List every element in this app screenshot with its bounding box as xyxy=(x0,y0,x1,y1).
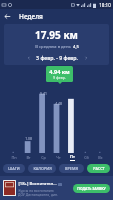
staticText: Пн xyxy=(11,155,17,160)
staticText: Ср xyxy=(41,155,46,160)
button[interactable]: [18+] Воспитател… xyxy=(0,176,113,200)
staticText: Курсы по воспитанию xyxy=(18,188,54,192)
button[interactable]: КАЛОРИЯ xyxy=(28,164,56,173)
button[interactable]: ПОДАТЬ ЗАЯВКУ xyxy=(73,184,110,193)
staticText: ШАГИ xyxy=(8,166,20,171)
button[interactable]: Сб xyxy=(79,153,93,161)
button[interactable]: Вс xyxy=(93,153,107,161)
button[interactable]: Чт xyxy=(51,153,65,161)
staticText: 4.48 xyxy=(55,101,62,106)
staticText: ВРЕМЯ xyxy=(65,166,78,171)
staticText: 5.41 xyxy=(40,91,47,96)
staticText: В среднем в день xyxy=(35,44,71,50)
button[interactable]: Previous week xyxy=(24,53,33,62)
staticText: Неделя xyxy=(19,12,43,21)
button[interactable]: ВРЕМЯ xyxy=(59,164,84,173)
button[interactable]: Next week xyxy=(81,53,90,62)
staticText: РАССТ xyxy=(93,166,105,171)
staticText: 3 февр. - 9 февр. xyxy=(36,54,78,61)
button[interactable]: ШАГИ xyxy=(3,164,25,173)
staticText: КАЛОРИЯ xyxy=(33,166,52,171)
staticText: Вс xyxy=(98,155,103,160)
staticText: 4,5 xyxy=(73,44,79,50)
button[interactable]: Вт xyxy=(21,153,36,161)
staticText: Вт xyxy=(26,155,31,160)
button[interactable]: Ср xyxy=(36,153,51,161)
button[interactable]: Пт xyxy=(65,153,79,161)
staticText: 18:10 xyxy=(99,2,111,8)
button[interactable]: РАССТ xyxy=(87,164,110,173)
staticText: Чт xyxy=(56,155,61,160)
staticText: Сб xyxy=(84,155,89,160)
staticText: ДОУ Дистанционно, дип. xyxy=(18,192,58,196)
staticText: 9 февр. xyxy=(53,75,66,80)
staticText: 4.94 км xyxy=(49,68,70,75)
staticText: [18+] Воспитател… xyxy=(18,181,57,187)
staticText: Пт xyxy=(70,154,75,159)
button[interactable]: 17.95 км xyxy=(4,24,109,65)
staticText: ПОДАТЬ ЗАЯВКУ xyxy=(77,186,106,191)
staticText: 17.95 км xyxy=(35,28,78,42)
staticText: 1.08 xyxy=(25,136,32,141)
button[interactable]: Back xyxy=(0,9,15,24)
button[interactable]: Пн xyxy=(6,153,21,161)
button[interactable]: 4.94 км xyxy=(46,66,73,82)
